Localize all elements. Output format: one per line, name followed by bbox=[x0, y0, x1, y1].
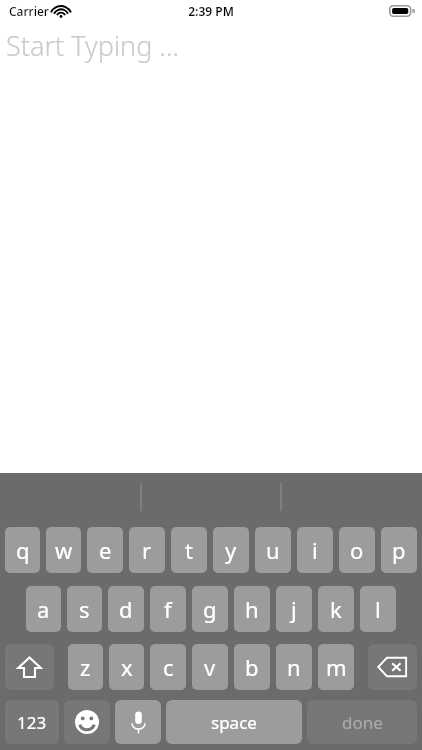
button[interactable]: Dictation bbox=[115, 700, 161, 744]
button[interactable]: x bbox=[109, 644, 144, 690]
staticText: t bbox=[185, 535, 193, 565]
staticText: c bbox=[163, 652, 174, 682]
staticText: n bbox=[287, 652, 301, 682]
button[interactable]: w bbox=[46, 527, 81, 573]
button[interactable]: done bbox=[307, 700, 417, 744]
staticText: p bbox=[392, 535, 406, 565]
button[interactable]: p bbox=[381, 527, 417, 573]
staticText: e bbox=[99, 535, 112, 565]
button[interactable]: j bbox=[276, 586, 312, 632]
staticText: x bbox=[121, 652, 133, 682]
button[interactable]: Backspace bbox=[368, 644, 417, 690]
staticText: i bbox=[312, 535, 318, 565]
staticText: f bbox=[164, 594, 172, 624]
button[interactable]: t bbox=[171, 527, 207, 573]
button[interactable]: e bbox=[87, 527, 123, 573]
staticText: h bbox=[245, 594, 259, 624]
button[interactable]: r bbox=[129, 527, 165, 573]
button[interactable]: Start Typing ... bbox=[0, 23, 422, 67]
button[interactable]: y bbox=[213, 527, 249, 573]
button[interactable]: n bbox=[276, 644, 312, 690]
staticText: y bbox=[225, 535, 237, 565]
staticText: v bbox=[204, 652, 216, 682]
button[interactable]: Shift bbox=[5, 644, 54, 690]
button[interactable]: z bbox=[68, 644, 103, 690]
button[interactable]: space bbox=[166, 700, 302, 744]
staticText: o bbox=[350, 535, 364, 565]
button[interactable]: l bbox=[360, 586, 396, 632]
staticText: a bbox=[37, 594, 50, 624]
staticText: k bbox=[330, 594, 342, 624]
button[interactable]: s bbox=[67, 586, 102, 632]
staticText: Carrier bbox=[9, 3, 49, 19]
button[interactable]: Emoji bbox=[64, 700, 110, 744]
staticText: w bbox=[55, 535, 73, 565]
button[interactable]: m bbox=[318, 644, 354, 690]
button[interactable]: b bbox=[234, 644, 270, 690]
button[interactable]: 123 bbox=[5, 700, 59, 744]
button[interactable]: k bbox=[318, 586, 354, 632]
staticText: l bbox=[375, 594, 381, 624]
staticText: 123 bbox=[17, 711, 47, 734]
button[interactable]: q bbox=[5, 527, 40, 573]
button[interactable]: h bbox=[234, 586, 270, 632]
button[interactable]: d bbox=[108, 586, 144, 632]
button[interactable]: v bbox=[192, 644, 228, 690]
staticText: b bbox=[245, 652, 259, 682]
staticText: space bbox=[211, 711, 257, 734]
button[interactable]: o bbox=[339, 527, 375, 573]
staticText: Start Typing ... bbox=[6, 27, 180, 64]
button[interactable]: f bbox=[150, 586, 186, 632]
button[interactable]: u bbox=[255, 527, 291, 573]
button[interactable]: a bbox=[26, 586, 61, 632]
staticText: done bbox=[342, 711, 383, 734]
button[interactable]: i bbox=[297, 527, 333, 573]
staticText: s bbox=[79, 594, 90, 624]
staticText: q bbox=[16, 535, 30, 565]
staticText: j bbox=[291, 594, 297, 624]
staticText: r bbox=[142, 535, 152, 565]
staticText: d bbox=[119, 594, 133, 624]
staticText: z bbox=[80, 652, 91, 682]
button[interactable]: c bbox=[150, 644, 186, 690]
staticText: 2:39 PM bbox=[188, 3, 234, 19]
staticText: g bbox=[203, 594, 217, 624]
staticText: u bbox=[266, 535, 280, 565]
button[interactable]: g bbox=[192, 586, 228, 632]
staticText: m bbox=[326, 652, 347, 682]
